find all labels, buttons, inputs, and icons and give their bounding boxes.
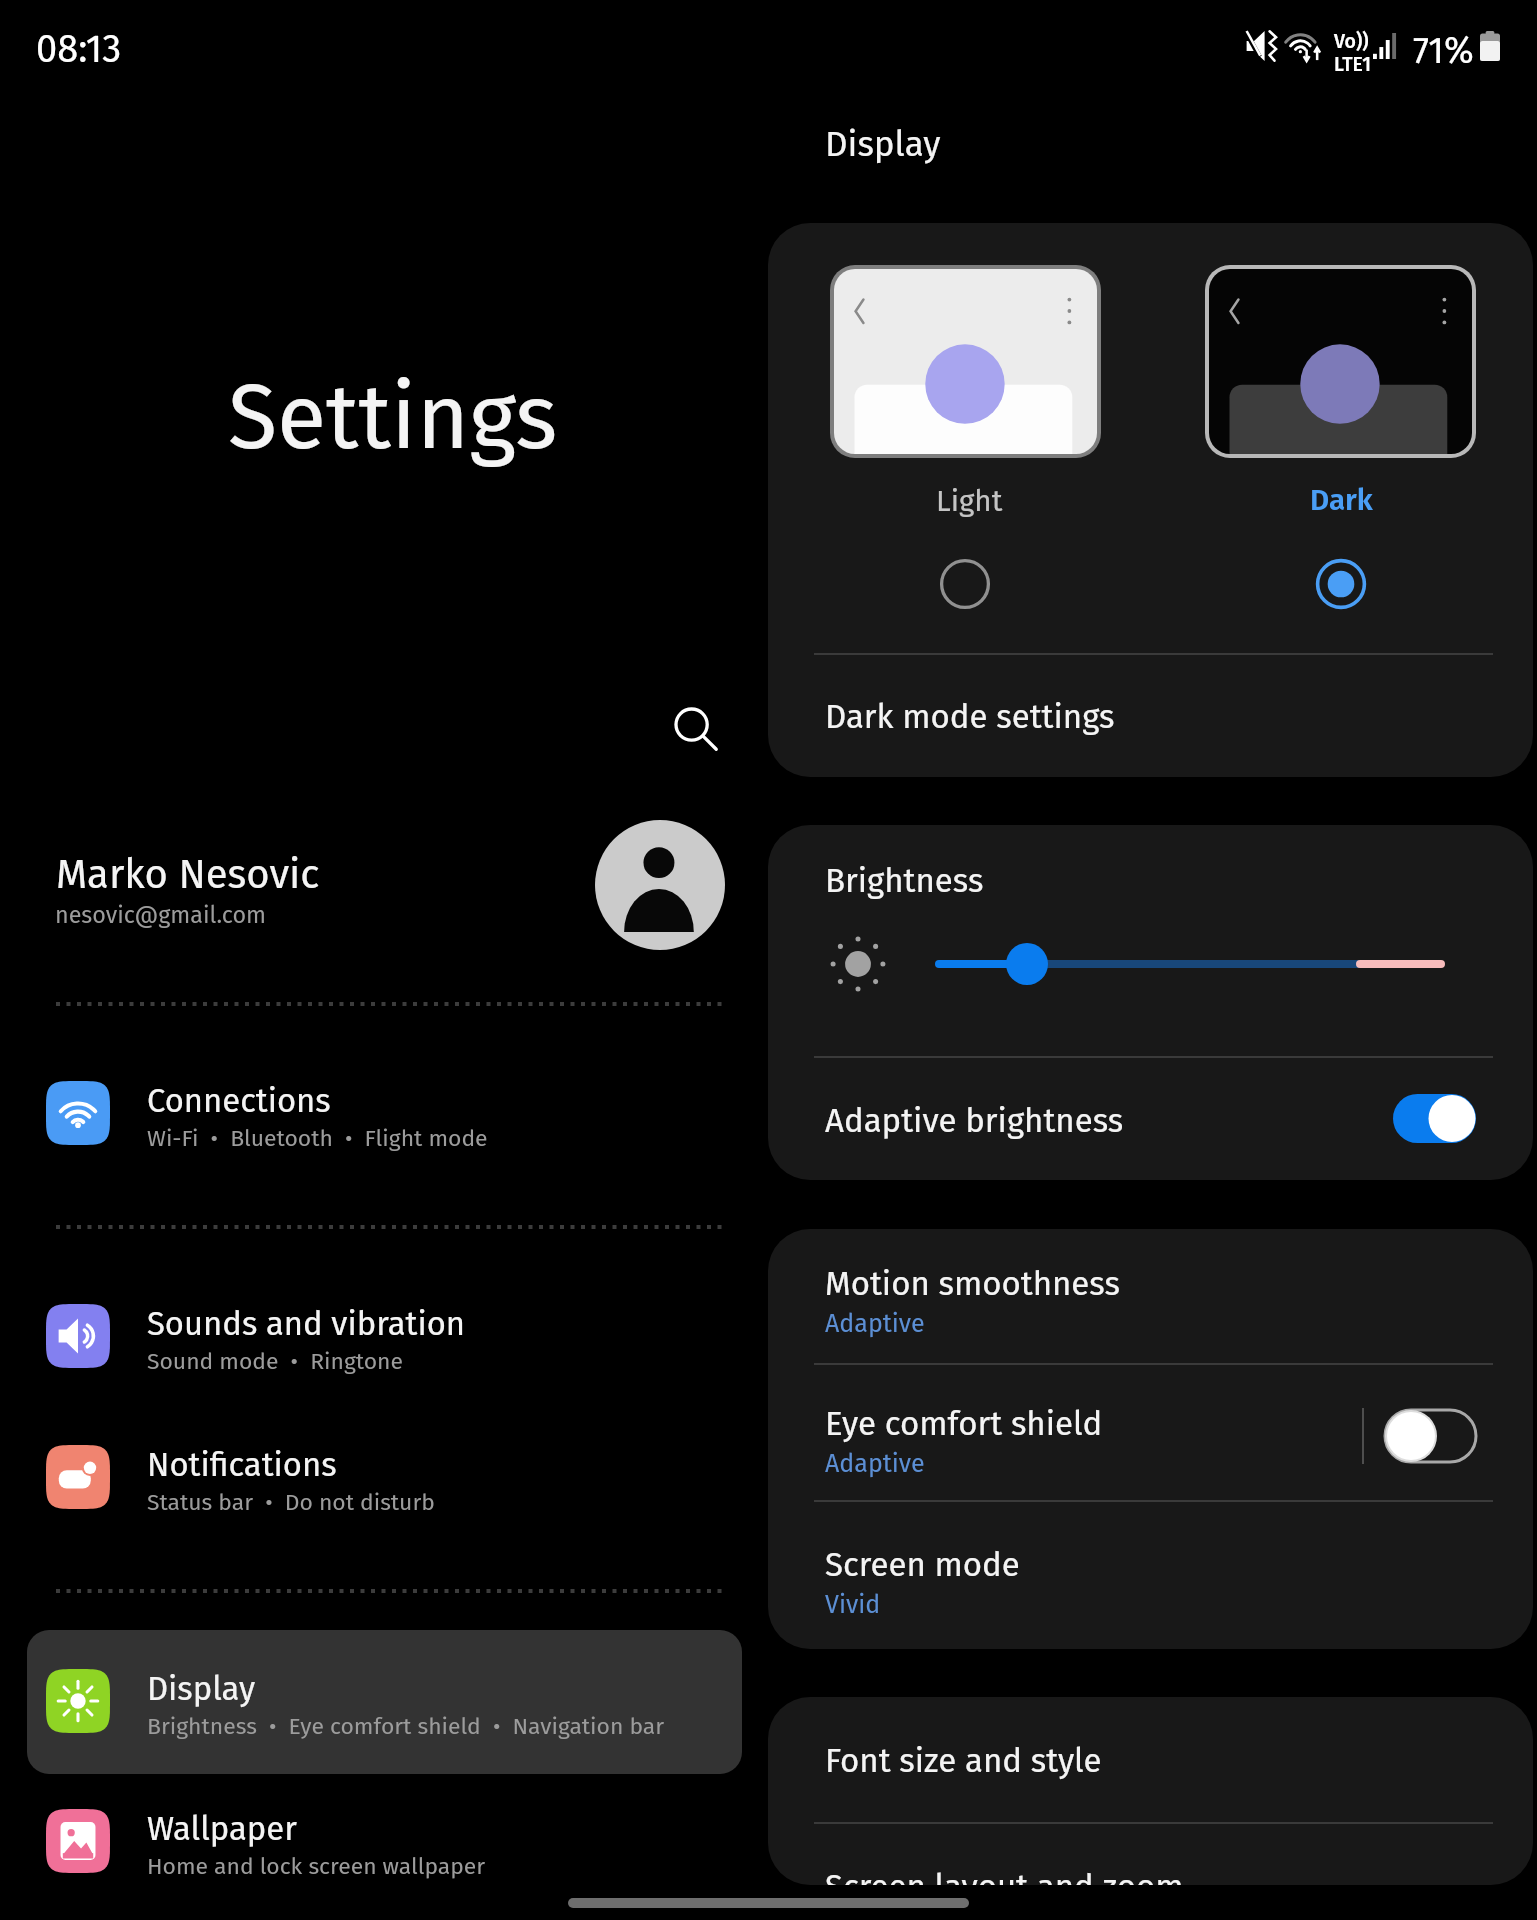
- staticText: Status bar • Do not disturb: [147, 1489, 435, 1516]
- button[interactable]: [30, 1632, 740, 1772]
- staticText: Connections: [147, 1081, 331, 1120]
- button[interactable]: [790, 1840, 1511, 1885]
- button[interactable]: [790, 1076, 1511, 1166]
- staticText: Display: [147, 1669, 256, 1708]
- staticText: Home and lock screen wallpaper: [147, 1853, 486, 1880]
- staticText: Wi-Fi • Bluetooth • Flight mode: [147, 1125, 488, 1152]
- staticText: LTE1: [1334, 53, 1372, 76]
- button[interactable]: [30, 1044, 740, 1184]
- button[interactable]: [1205, 265, 1476, 458]
- button[interactable]: [790, 1255, 1511, 1355]
- button[interactable]: [30, 1772, 740, 1912]
- staticText: Vo)): [1334, 30, 1369, 53]
- button[interactable]: Selected: [1305, 548, 1377, 620]
- staticText: Adaptive brightness: [825, 1101, 1124, 1141]
- button[interactable]: Eye comfort shield off: [1373, 1398, 1488, 1474]
- staticText: Eye comfort shield: [825, 1404, 1103, 1444]
- button[interactable]: [790, 1525, 1511, 1625]
- staticText: nesovic@gmail.com: [55, 901, 267, 929]
- button[interactable]: Not selected: [929, 548, 1001, 620]
- button[interactable]: Marko Nesovic: [30, 820, 740, 955]
- button[interactable]: [27, 1630, 742, 1774]
- staticText: Sound mode • Ringtone: [147, 1348, 403, 1375]
- staticText: Wallpaper: [147, 1809, 297, 1848]
- button[interactable]: [790, 1385, 1511, 1489]
- staticText: Settings: [228, 364, 558, 472]
- button[interactable]: Adaptive brightness on: [1381, 1082, 1488, 1155]
- staticText: Screen mode: [825, 1545, 1020, 1585]
- staticText: Dark mode settings: [825, 697, 1115, 737]
- staticText: Adaptive: [825, 1309, 925, 1339]
- staticText: Adaptive: [825, 1449, 925, 1479]
- staticText: Vivid: [825, 1590, 881, 1620]
- staticText: Brightness • Eye comfort shield • Naviga…: [147, 1713, 665, 1740]
- staticText: Screen layout and zoom: [825, 1867, 1184, 1885]
- staticText: 08:13: [36, 26, 122, 72]
- staticText: Notifications: [147, 1445, 337, 1484]
- staticText: Display: [825, 123, 941, 165]
- staticText: Light: [936, 483, 1003, 518]
- button[interactable]: [30, 1267, 740, 1407]
- button[interactable]: [790, 1717, 1511, 1813]
- staticText: Font size and style: [825, 1741, 1102, 1781]
- staticText: Brightness: [825, 861, 984, 901]
- button[interactable]: [790, 677, 1511, 767]
- staticText: Motion smoothness: [825, 1264, 1120, 1304]
- staticText: Dark: [1310, 482, 1373, 517]
- staticText: 71%: [1413, 29, 1474, 72]
- staticText: Sounds and vibration: [147, 1304, 465, 1343]
- button[interactable]: Search: [653, 686, 739, 772]
- button[interactable]: [30, 1408, 740, 1548]
- staticText: Marko Nesovic: [56, 851, 320, 899]
- button[interactable]: [830, 265, 1101, 458]
